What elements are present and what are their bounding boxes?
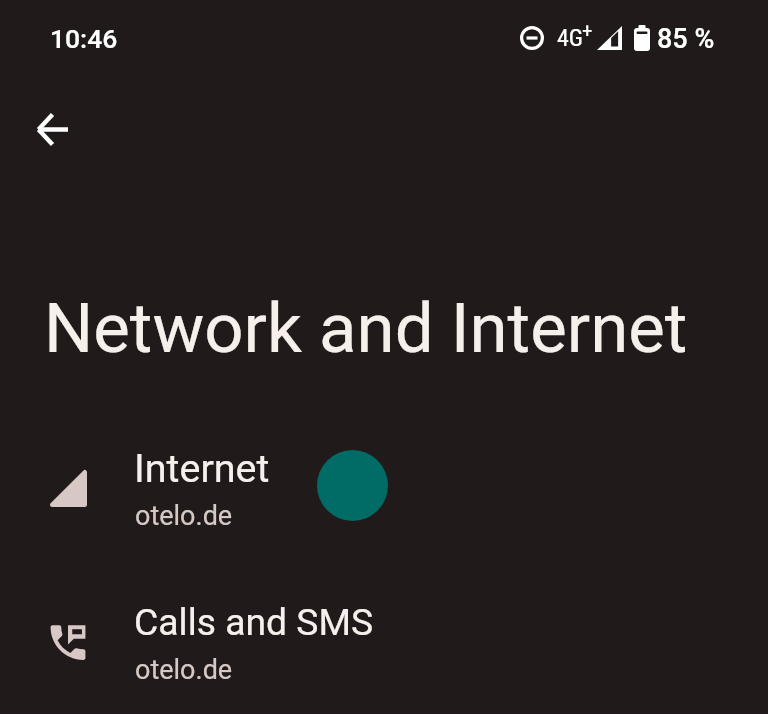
staticText: 10:46 — [50, 23, 118, 54]
staticText: 4G — [557, 24, 584, 52]
staticText: otelo.de — [135, 500, 233, 532]
button[interactable]: Back — [22, 99, 82, 159]
button[interactable]: Calls and SMS — [0, 577, 768, 707]
staticText: Network and Internet — [44, 288, 688, 369]
staticText: + — [582, 18, 593, 43]
staticText: Internet — [134, 445, 270, 491]
staticText: 85 % — [657, 23, 715, 55]
button[interactable]: Internet — [0, 423, 768, 553]
staticText: Calls and SMS — [134, 600, 374, 644]
staticText: otelo.de — [135, 654, 233, 686]
